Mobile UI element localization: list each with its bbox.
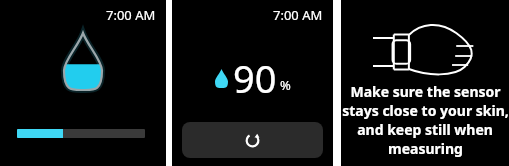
- staticText: 90: [233, 52, 277, 104]
- staticText: 7:00 AM: [273, 6, 323, 24]
- button[interactable]: Refresh measurement: [182, 122, 323, 158]
- staticText: measuring: [388, 139, 463, 158]
- staticText: and keep still when: [357, 120, 493, 139]
- staticText: stays close to your skin,: [342, 101, 509, 120]
- staticText: Make sure the sensor: [350, 82, 501, 101]
- staticText: 7:00 AM: [106, 6, 156, 24]
- staticText: %: [280, 76, 291, 94]
- button[interactable]: [17, 129, 145, 138]
